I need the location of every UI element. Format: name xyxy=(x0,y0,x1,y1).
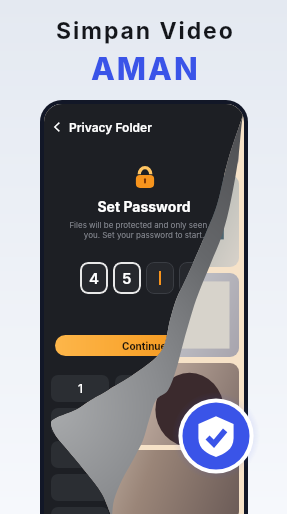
button[interactable]: 6 xyxy=(179,408,237,435)
staticText: 5 xyxy=(122,269,132,287)
button[interactable]: 7 xyxy=(51,441,109,468)
button[interactable]: 2 xyxy=(115,375,173,402)
button[interactable] xyxy=(51,507,109,514)
button[interactable]: 5 xyxy=(115,408,173,435)
staticText: Simpan Video xyxy=(56,17,235,45)
button[interactable] xyxy=(179,507,237,514)
button[interactable] xyxy=(115,507,173,514)
staticText: Continue xyxy=(122,340,167,352)
button[interactable] xyxy=(179,262,207,294)
staticText: 9 xyxy=(204,447,212,462)
button[interactable] xyxy=(179,474,237,501)
button[interactable]: Secure xyxy=(172,392,260,480)
button[interactable]: 1 xyxy=(51,375,109,402)
button[interactable]: 8 xyxy=(115,441,173,468)
staticText: Files will be protected and only seen by… xyxy=(50,220,238,240)
staticText: Privacy Folder xyxy=(69,120,152,135)
button[interactable] xyxy=(49,363,239,445)
staticText: 1 xyxy=(78,381,83,396)
staticText: AMAN xyxy=(91,50,200,88)
staticText: 3 xyxy=(204,381,212,396)
staticText: 4 xyxy=(89,269,99,287)
staticText: 5 xyxy=(140,414,148,429)
button[interactable]: 4 xyxy=(51,408,109,435)
staticText: Set Password xyxy=(44,198,244,215)
button[interactable]: Back xyxy=(49,118,152,136)
button[interactable] xyxy=(49,175,239,267)
button[interactable]: 4 xyxy=(80,262,108,294)
button[interactable]: 3 xyxy=(179,375,237,402)
button[interactable] xyxy=(49,450,239,514)
staticText: 8 xyxy=(140,447,148,462)
button[interactable] xyxy=(49,273,239,357)
button[interactable] xyxy=(51,474,109,501)
button[interactable]: Continue xyxy=(55,335,233,356)
button[interactable]: 5 xyxy=(113,262,141,294)
staticText: 6 xyxy=(204,414,212,429)
button[interactable] xyxy=(115,474,173,501)
button[interactable]: 9 xyxy=(179,441,237,468)
button[interactable] xyxy=(49,104,239,168)
button[interactable] xyxy=(146,262,174,294)
